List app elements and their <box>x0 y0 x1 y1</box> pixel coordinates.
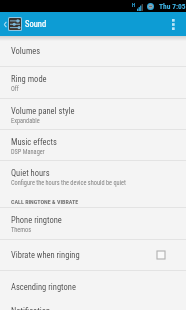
button[interactable]: Phone ringtone <box>0 208 186 240</box>
staticText: Volumes <box>11 46 41 56</box>
staticText: DSP Manager <box>11 148 45 155</box>
staticText: Phone ringtone <box>11 215 62 225</box>
button[interactable]: More options <box>168 12 186 36</box>
staticText: Volume panel style <box>11 106 75 116</box>
staticText: Notification <box>11 306 51 310</box>
staticText: Off <box>11 85 19 92</box>
button[interactable]: Ring mode <box>0 67 186 99</box>
staticText: Themos <box>11 226 32 233</box>
button[interactable]: Music effects <box>0 130 186 161</box>
staticText: Configure the hours the device should be… <box>11 179 126 186</box>
staticText: Sound <box>25 19 47 29</box>
staticText: H <box>132 2 136 8</box>
button[interactable]: Vibrate when ringing <box>0 240 186 271</box>
staticText: Ring mode <box>11 74 47 84</box>
staticText: Expandable <box>11 117 40 124</box>
button[interactable]: Ascending ringtone <box>0 271 186 302</box>
staticText: Quiet hours <box>11 168 50 178</box>
staticText: CALL RINGTONE & VIBRATE <box>11 198 79 205</box>
staticText: Thu 7:05 <box>159 2 186 11</box>
staticText: Vibrate when ringing <box>11 250 80 260</box>
button[interactable]: Volume panel style <box>0 99 186 130</box>
button[interactable]: Quiet hours <box>0 161 186 192</box>
button[interactable]: Navigate up <box>0 12 50 36</box>
staticText: Music effects <box>11 137 57 147</box>
staticText: Ascending ringtone <box>11 282 76 292</box>
button[interactable]: Volumes <box>0 36 186 67</box>
